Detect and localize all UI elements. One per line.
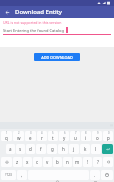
- button[interactable]: x: [23, 157, 32, 167]
- button[interactable]: ,: [17, 170, 27, 180]
- staticText: 7: [75, 131, 77, 135]
- staticText: 6: [64, 131, 66, 135]
- staticText: k: [84, 146, 87, 152]
- staticText: 0: [108, 131, 110, 135]
- staticText: g: [51, 146, 54, 152]
- staticText: URL is not supported in this version: [3, 20, 62, 25]
- staticText: 4: [41, 131, 43, 135]
- staticText: t: [52, 135, 54, 141]
- staticText: ADD DOWNLOAD: [41, 55, 73, 60]
- staticText: h: [62, 146, 65, 152]
- button[interactable]: Shift: [1, 157, 12, 167]
- button[interactable]: 8: [81, 131, 91, 141]
- button[interactable]: 5: [48, 131, 58, 141]
- button[interactable]: 1: [1, 131, 12, 141]
- staticText: ?123: [5, 173, 12, 177]
- button[interactable]: .: [90, 170, 100, 180]
- staticText: a: [9, 146, 12, 152]
- staticText: f: [40, 146, 42, 152]
- staticText: v: [46, 159, 49, 165]
- staticText: w: [17, 135, 21, 141]
- button[interactable]: c: [33, 157, 42, 167]
- button[interactable]: 7: [70, 131, 80, 141]
- staticText: Download Entity: [15, 8, 63, 16]
- staticText: p: [107, 135, 110, 141]
- staticText: ?: [97, 159, 99, 165]
- staticText: o: [96, 135, 99, 141]
- button[interactable]: 4: [37, 131, 47, 141]
- button[interactable]: n: [63, 157, 72, 167]
- staticText: q: [5, 135, 8, 141]
- staticText: n: [66, 159, 69, 165]
- staticText: b: [56, 159, 59, 165]
- button[interactable]: Navigate up: [3, 8, 12, 17]
- button[interactable]: Backspace: [103, 157, 113, 167]
- staticText: e: [29, 135, 32, 141]
- button[interactable]: Emoji: [101, 170, 113, 180]
- button[interactable]: k: [80, 144, 90, 154]
- button[interactable]: g: [47, 144, 57, 154]
- button[interactable]: ?123: [1, 170, 16, 180]
- staticText: l: [95, 146, 97, 152]
- button[interactable]: 0: [103, 131, 113, 141]
- staticText: i: [85, 135, 87, 141]
- button[interactable]: v: [43, 157, 52, 167]
- staticText: 2: [18, 131, 20, 135]
- staticText: 5: [52, 131, 54, 135]
- button[interactable]: m: [73, 157, 82, 167]
- staticText: !: [87, 159, 89, 165]
- staticText: 3: [30, 131, 32, 135]
- button[interactable]: d: [26, 144, 35, 154]
- staticText: ,: [21, 172, 23, 178]
- button[interactable]: b: [53, 157, 62, 167]
- staticText: m: [75, 159, 80, 165]
- staticText: 9: [97, 131, 99, 135]
- button[interactable]: 9: [92, 131, 102, 141]
- button[interactable]: l: [91, 144, 101, 154]
- staticText: x: [26, 159, 29, 165]
- staticText: 1: [6, 131, 8, 135]
- staticText: y: [63, 135, 66, 141]
- staticText: c: [36, 159, 39, 165]
- staticText: r: [41, 135, 43, 141]
- staticText: Start Entering the found Catalog: [3, 28, 64, 33]
- button[interactable]: j: [69, 144, 79, 154]
- button[interactable]: 2: [13, 131, 24, 141]
- button[interactable]: !: [83, 157, 92, 167]
- button[interactable]: a: [6, 144, 15, 154]
- staticText: .: [94, 172, 96, 178]
- button[interactable]: z: [13, 157, 22, 167]
- staticText: d: [29, 146, 32, 152]
- staticText: s: [19, 146, 22, 152]
- button[interactable]: 3: [25, 131, 36, 141]
- button[interactable]: ?: [93, 157, 102, 167]
- staticText: j: [73, 146, 75, 152]
- button[interactable]: ADD DOWNLOAD: [34, 53, 80, 61]
- staticText: z: [16, 159, 19, 165]
- button[interactable]: 6: [59, 131, 69, 141]
- staticText: 8: [85, 131, 87, 135]
- button[interactable]: s: [16, 144, 25, 154]
- button[interactable]: Enter: [102, 144, 113, 154]
- button[interactable]: f: [36, 144, 46, 154]
- staticText: u: [74, 135, 77, 141]
- button[interactable]: h: [58, 144, 68, 154]
